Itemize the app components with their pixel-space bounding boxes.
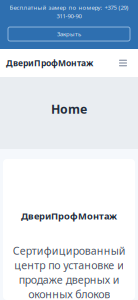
button[interactable]: Закрыть (8, 27, 130, 41)
staticText: Закрыть (57, 30, 81, 38)
staticText: ДвериПрофМонтаж (6, 57, 93, 69)
staticText: ДвериПрофМонтаж (21, 210, 117, 222)
staticText: Бесплатный замер по номеру: +375 (29) (9, 3, 128, 12)
staticText: 311-90-90 (56, 12, 81, 20)
staticText: Сертифицированный центр по установке и п… (12, 243, 125, 300)
button[interactable]: Menu (115, 56, 131, 70)
staticText: Home (51, 101, 87, 117)
